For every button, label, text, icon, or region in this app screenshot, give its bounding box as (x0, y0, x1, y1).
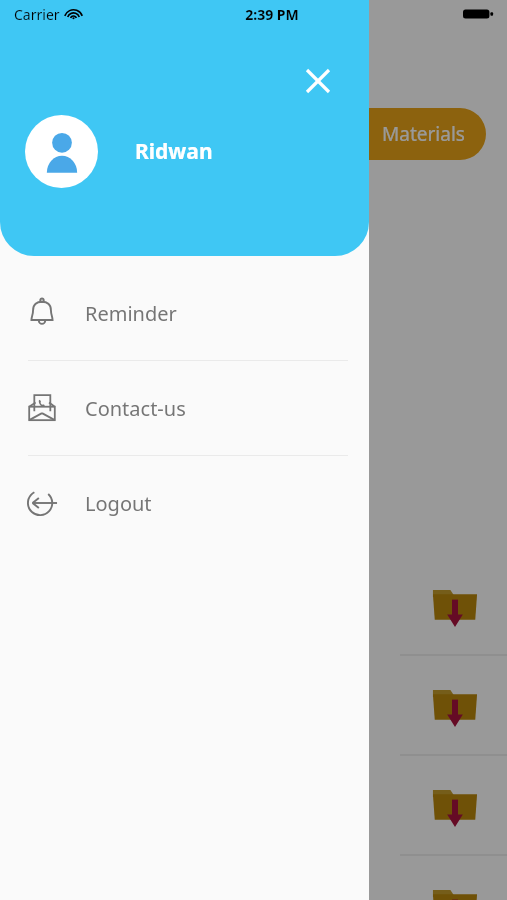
button[interactable]: Logout (0, 456, 369, 550)
staticText: Carrier (14, 5, 60, 24)
button[interactable] (0, 860, 507, 900)
button[interactable]: Close menu (296, 59, 340, 103)
button[interactable]: Materials (150, 108, 486, 160)
button[interactable] (0, 0, 507, 900)
button[interactable]: Reminder (0, 266, 369, 360)
button[interactable] (0, 560, 507, 660)
staticText: Ridwan (135, 137, 213, 166)
staticText: Logout (85, 490, 152, 517)
staticText: Materials (382, 121, 465, 147)
button[interactable]: Contact-us (0, 361, 369, 455)
staticText: Contact-us (85, 395, 186, 422)
button[interactable] (0, 760, 507, 860)
button[interactable] (0, 660, 507, 760)
staticText: 2:39 PM (245, 5, 299, 24)
staticText: Reminder (85, 300, 177, 327)
